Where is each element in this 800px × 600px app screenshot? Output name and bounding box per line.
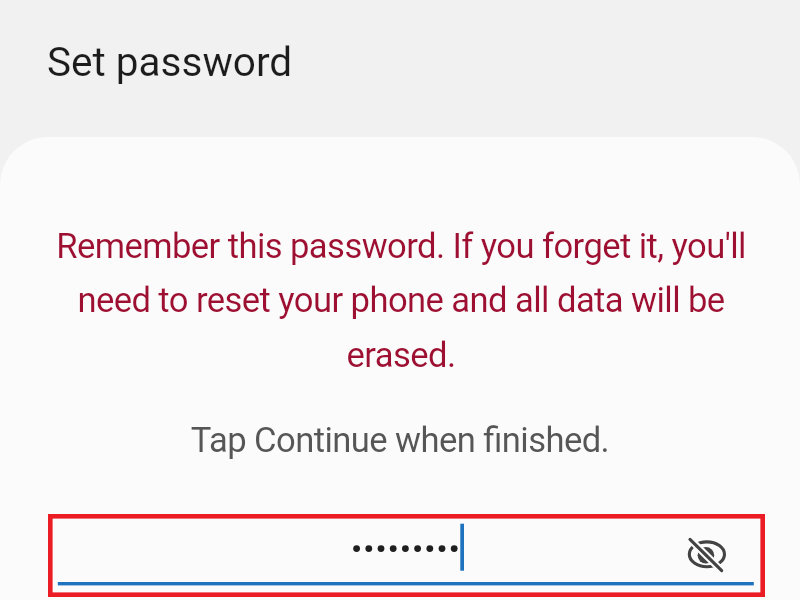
staticText: Tap Continue when finished. (0, 420, 800, 461)
button[interactable]: Hide password (48, 514, 765, 597)
button[interactable]: Hide password (682, 532, 730, 580)
staticText: Set password (47, 38, 293, 85)
staticText: Remember this password. If you forget it… (1, 226, 800, 376)
